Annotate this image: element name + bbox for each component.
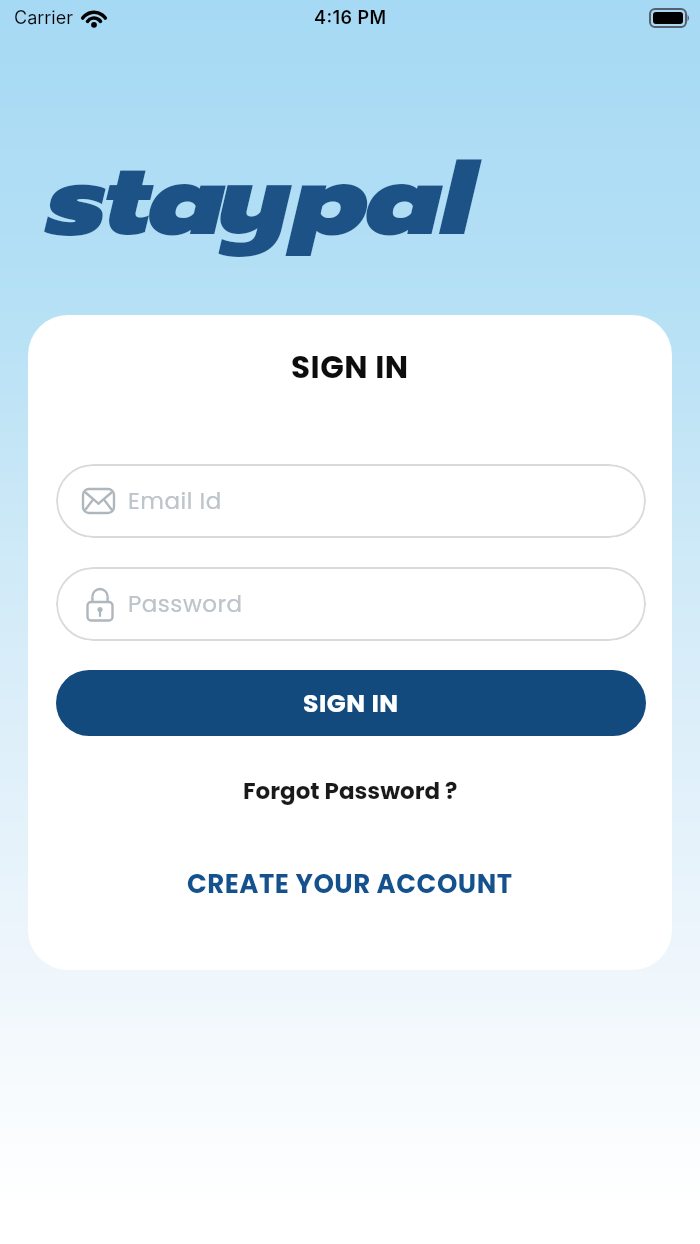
button[interactable]: Password	[56, 567, 646, 641]
staticText: SIGN IN	[291, 345, 409, 388]
staticText: SIGN IN	[303, 686, 399, 721]
staticText: CREATE YOUR ACCOUNT	[187, 866, 513, 902]
staticText: 4:16 PM	[314, 7, 387, 29]
staticText: Email Id	[128, 485, 222, 517]
button[interactable]: Forgot Password ?	[243, 775, 458, 807]
staticText: Password	[128, 588, 243, 620]
button[interactable]: Email Id	[56, 464, 646, 538]
staticText: Carrier	[14, 7, 74, 29]
staticText: staypal	[47, 125, 474, 276]
staticText: Forgot Password ?	[243, 775, 458, 807]
button[interactable]: CREATE YOUR ACCOUNT	[187, 866, 513, 902]
button[interactable]: SIGN IN	[56, 670, 646, 736]
